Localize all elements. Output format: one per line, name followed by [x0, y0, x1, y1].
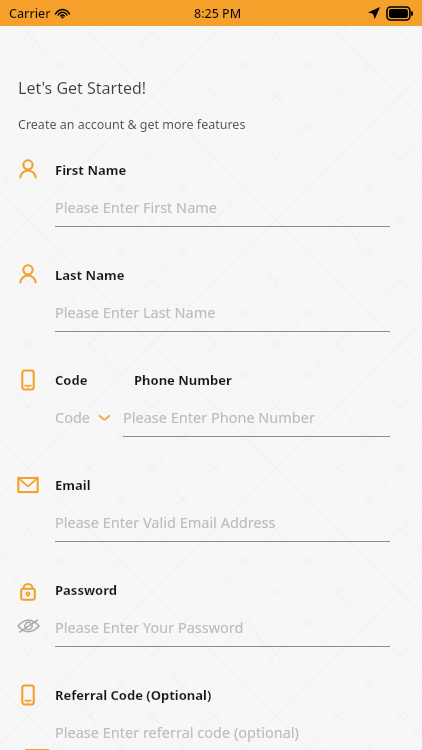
- staticText: Please Enter Phone Number: [123, 407, 315, 427]
- other: Email: [0, 470, 55, 500]
- staticText: Last Name: [55, 266, 125, 284]
- button[interactable]: Email: [0, 470, 422, 575]
- other: First Name: [0, 155, 55, 185]
- staticText: Password: [55, 581, 117, 599]
- staticText: Please Enter Valid Email Address: [55, 512, 276, 532]
- other: Phone: [0, 365, 55, 395]
- staticText: Please Enter First Name: [55, 197, 218, 217]
- staticText: Create an account & get more features: [18, 116, 246, 133]
- staticText: Carrier: [9, 5, 51, 22]
- staticText: Referral Code (Optional): [55, 686, 212, 704]
- staticText: Let's Get Started!: [18, 77, 147, 99]
- other: Referral Code (Optional): [0, 680, 55, 710]
- button[interactable]: Password: [0, 575, 422, 680]
- staticText: First Name: [55, 161, 127, 179]
- staticText: Please Enter Your Password: [55, 617, 244, 637]
- staticText: Code: [55, 371, 88, 389]
- button[interactable]: Referral Code (Optional): [0, 680, 422, 750]
- staticText: 8:25 PM: [194, 5, 242, 22]
- other: Last Name: [0, 260, 55, 290]
- button[interactable]: Please Enter Phone Number: [123, 407, 390, 437]
- staticText: Phone Number: [134, 371, 232, 389]
- button[interactable]: Last Name: [0, 260, 422, 365]
- staticText: Please Enter Last Name: [55, 302, 216, 322]
- staticText: Email: [55, 476, 91, 494]
- button[interactable]: Show password: [18, 617, 55, 635]
- other: Password: [0, 575, 55, 605]
- staticText: Code: [55, 407, 91, 427]
- button[interactable]: Code: [55, 407, 123, 427]
- staticText: Please Enter referral code (optional): [55, 722, 299, 742]
- button[interactable]: First Name: [0, 155, 422, 260]
